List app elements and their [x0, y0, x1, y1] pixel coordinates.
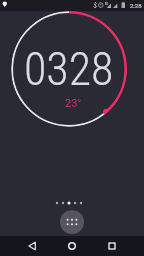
button[interactable] — [22, 236, 42, 256]
button[interactable] — [102, 236, 122, 256]
button[interactable] — [60, 210, 84, 234]
staticText: 2:28 — [130, 2, 142, 9]
staticText: 0328 — [24, 42, 114, 96]
button[interactable] — [62, 236, 82, 256]
staticText: 23° — [65, 97, 82, 110]
button[interactable]: 0328 — [11, 11, 127, 127]
